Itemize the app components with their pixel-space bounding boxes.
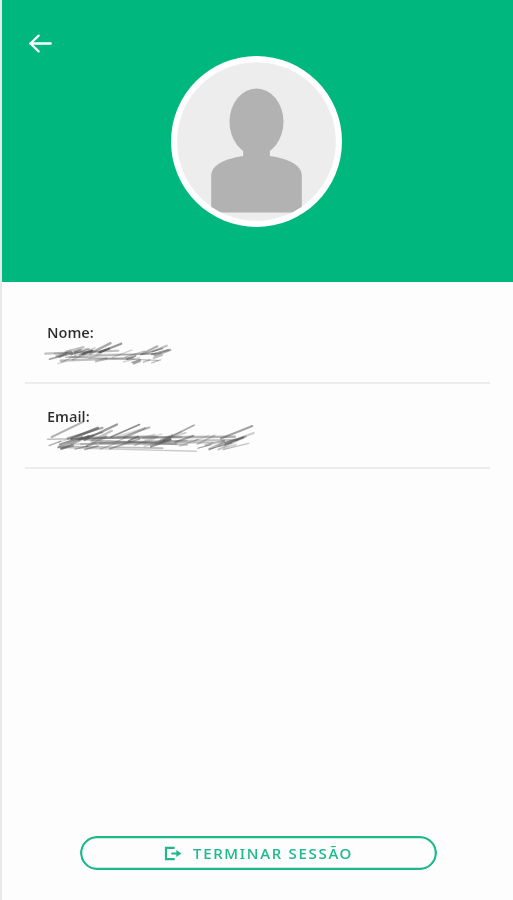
staticText: Email: bbox=[47, 406, 90, 426]
staticText: Nome: bbox=[47, 322, 94, 342]
button[interactable]: TERMINAR SESSÃO bbox=[80, 836, 437, 870]
staticText: TERMINAR SESSÃO bbox=[193, 843, 354, 863]
button[interactable]: Back bbox=[18, 21, 62, 65]
